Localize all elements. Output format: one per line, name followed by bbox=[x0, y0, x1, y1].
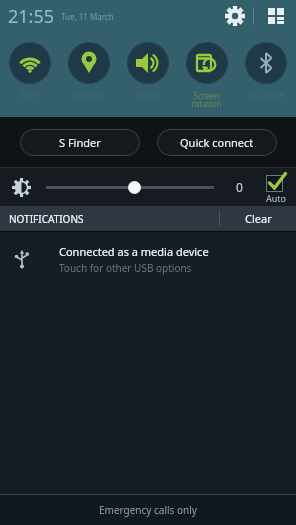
staticText: Connected as a media device bbox=[59, 244, 209, 259]
button[interactable]: Clear bbox=[220, 206, 296, 231]
staticText: S Finder bbox=[59, 135, 101, 150]
button[interactable]: Auto bbox=[266, 171, 287, 204]
staticText: Tue, 11 March bbox=[61, 11, 114, 22]
staticText: Auto bbox=[266, 192, 287, 204]
staticText: Touch for other USB options bbox=[59, 261, 192, 275]
button[interactable]: Sound bbox=[118, 32, 177, 117]
button[interactable] bbox=[46, 177, 214, 197]
button[interactable]: Location bbox=[59, 32, 118, 117]
button[interactable] bbox=[260, 0, 292, 32]
staticText: 0 bbox=[236, 179, 243, 195]
staticText: 21:55 bbox=[8, 4, 55, 29]
staticText: Clear bbox=[245, 211, 272, 226]
button[interactable]: S Finder bbox=[20, 129, 140, 156]
staticText: Screen rotation bbox=[191, 90, 222, 109]
button[interactable]: Quick connect bbox=[157, 129, 277, 156]
staticText: Quick connect bbox=[180, 135, 254, 150]
button[interactable]: Screen rotation bbox=[177, 32, 236, 117]
button[interactable]: Connected as a media device bbox=[0, 231, 296, 287]
staticText: NOTIFICATIONS bbox=[9, 212, 84, 226]
button[interactable]: Wi-Fi bbox=[0, 32, 59, 117]
button[interactable]: Bluetooth bbox=[236, 32, 295, 117]
staticText: Emergency calls only bbox=[99, 503, 197, 517]
button[interactable] bbox=[219, 0, 251, 32]
